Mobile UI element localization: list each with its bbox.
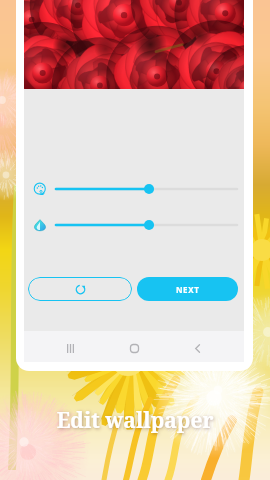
button[interactable]: Home bbox=[120, 334, 148, 362]
staticText: Edit wallpaper bbox=[0, 406, 270, 435]
button[interactable]: Recents bbox=[56, 334, 84, 362]
button[interactable]: NEXT bbox=[137, 277, 238, 301]
button[interactable]: Reset bbox=[28, 277, 132, 301]
button[interactable]: Back bbox=[183, 334, 211, 362]
staticText: NEXT bbox=[176, 284, 200, 295]
button[interactable]: Color bbox=[52, 181, 242, 197]
button[interactable]: Blur bbox=[52, 217, 242, 233]
